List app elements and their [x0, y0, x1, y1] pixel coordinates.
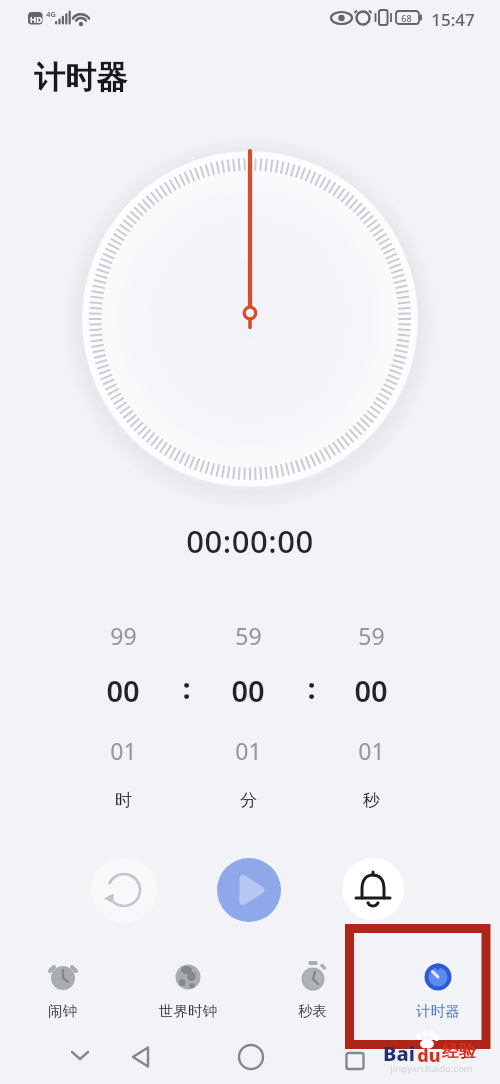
staticText: 计时器	[416, 1002, 460, 1020]
staticText: jingyan.baidu.com	[390, 1062, 473, 1075]
staticText: 99	[110, 620, 137, 651]
button[interactable]: 计时器	[375, 958, 500, 1020]
staticText: 01	[358, 735, 385, 766]
staticText: 计时器	[34, 58, 127, 97]
staticText: 59	[235, 620, 262, 651]
staticText: 世界时钟	[159, 1002, 217, 1020]
staticText: 分	[240, 790, 257, 811]
button[interactable]: 闹钟	[0, 958, 125, 1020]
button[interactable]	[217, 858, 281, 922]
button[interactable]: 秒表	[250, 958, 375, 1020]
staticText: :	[307, 668, 316, 707]
staticText: 59	[358, 620, 385, 651]
staticText: du	[417, 1043, 441, 1068]
staticText: 15:47	[431, 8, 475, 31]
staticText: 闹钟	[48, 1002, 77, 1020]
staticText: 00	[354, 671, 388, 710]
staticText: 00	[231, 671, 265, 710]
staticText: 4G	[46, 9, 56, 19]
staticText: Bai	[383, 1040, 415, 1067]
staticText: 秒	[363, 790, 380, 811]
staticText: 经验	[442, 1041, 476, 1062]
staticText: 00	[106, 671, 140, 710]
staticText: 68	[401, 12, 412, 24]
staticText: 01	[235, 735, 262, 766]
staticText: 时	[115, 790, 132, 811]
button[interactable]	[342, 858, 404, 920]
button[interactable]	[91, 857, 157, 923]
button[interactable]: 世界时钟	[125, 958, 250, 1020]
staticText: 00:00:00	[186, 520, 314, 562]
staticText: 秒表	[298, 1002, 327, 1020]
staticText: 01	[110, 735, 137, 766]
staticText: HD	[30, 14, 42, 25]
staticText: :	[182, 668, 191, 707]
